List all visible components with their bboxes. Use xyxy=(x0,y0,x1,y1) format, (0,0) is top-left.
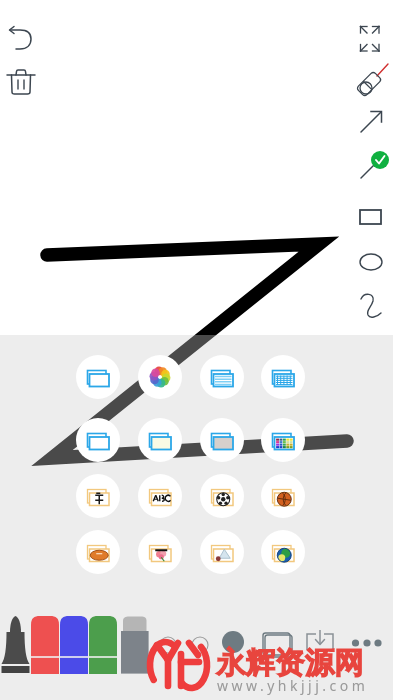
button[interactable]: Template 9 xyxy=(76,474,120,518)
button[interactable]: Template 13 xyxy=(76,530,120,574)
button[interactable]: Template 14 xyxy=(138,530,182,574)
button[interactable]: Template 10 xyxy=(138,474,182,518)
button[interactable]: Fullscreen xyxy=(355,23,385,53)
button[interactable]: Template 16 xyxy=(261,530,305,574)
button[interactable]: Curve xyxy=(355,282,389,316)
button[interactable]: Save xyxy=(302,628,342,658)
button[interactable]: Undo xyxy=(2,20,40,58)
button[interactable]: Rectangle xyxy=(355,195,389,229)
button[interactable]: Template 8 xyxy=(261,418,305,462)
button[interactable]: Template 11 xyxy=(200,474,244,518)
button[interactable]: Template 1 xyxy=(76,355,120,399)
button[interactable]: Arrow xyxy=(355,104,389,138)
button[interactable]: Duplicate xyxy=(258,628,298,658)
button[interactable]: Eraser xyxy=(355,62,389,96)
button[interactable]: Template 4 xyxy=(261,355,305,399)
button[interactable]: Ellipse xyxy=(355,238,389,272)
button[interactable]: Template 5 xyxy=(76,418,120,462)
button[interactable]: Template 12 xyxy=(261,474,305,518)
button[interactable]: Line tool selected xyxy=(355,148,389,182)
button[interactable]: Stroke width xyxy=(220,630,246,656)
button[interactable]: Eraser tool xyxy=(120,615,150,674)
button[interactable]: Template 2 xyxy=(138,355,182,399)
staticText: 永辉资源网 xyxy=(216,645,364,682)
button[interactable]: Blue marker xyxy=(60,616,88,674)
button[interactable]: Template 6 xyxy=(138,418,182,462)
button[interactable]: Delete xyxy=(2,62,40,100)
button[interactable]: Template 15 xyxy=(200,530,244,574)
button[interactable]: Template 3 xyxy=(200,355,244,399)
button[interactable]: Green marker xyxy=(89,616,117,674)
button[interactable]: Red marker xyxy=(31,616,59,674)
button[interactable]: Template 7 xyxy=(200,418,244,462)
button[interactable]: Black pen xyxy=(2,612,40,674)
button[interactable]: More options xyxy=(348,632,388,654)
staticText: www.yhkjjj.com xyxy=(217,676,369,695)
